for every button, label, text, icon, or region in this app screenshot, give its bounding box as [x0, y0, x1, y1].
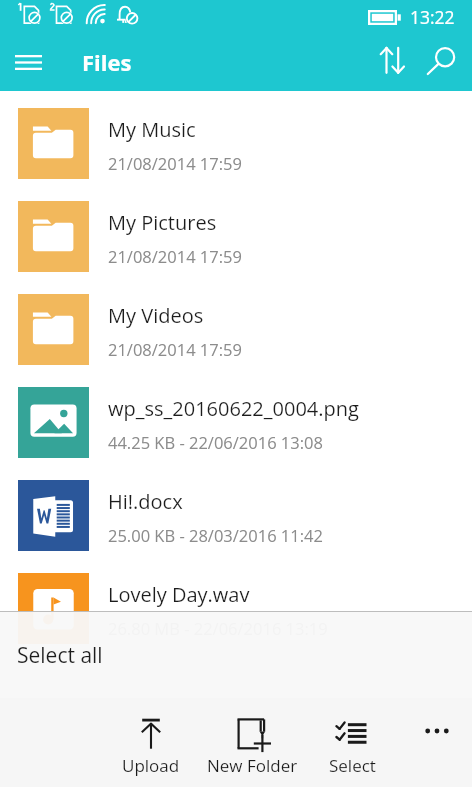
button[interactable]: My Videos [0, 284, 472, 377]
staticText: 13:22 [410, 5, 455, 29]
button[interactable]: Menu [0, 34, 56, 91]
staticText: Lovely Day.wav [108, 581, 250, 608]
button[interactable]: More options [398, 698, 472, 787]
staticText: wp_ss_20160622_0004.png [108, 395, 359, 422]
staticText: 21/08/2014 17:59 [108, 245, 242, 267]
button[interactable]: New Folder [204, 698, 300, 787]
staticText: 21/08/2014 17:59 [108, 152, 242, 174]
button[interactable]: Upload [103, 698, 199, 787]
button[interactable]: My Music [0, 98, 472, 191]
button[interactable]: Sort [367, 34, 418, 91]
staticText: My Music [108, 116, 196, 143]
staticText: My Videos [108, 302, 204, 329]
button[interactable]: wp_ss_20160622_0004.png [0, 377, 472, 470]
button[interactable]: Select all [0, 612, 472, 698]
staticText: 25.00 KB - 28/03/2016 11:42 [108, 524, 323, 546]
staticText: Hi!.docx [108, 488, 183, 515]
staticText: 44.25 KB - 22/06/2016 13:08 [108, 431, 323, 453]
button[interactable]: Hi!.docx [0, 470, 472, 563]
staticText: 21/08/2014 17:59 [108, 338, 242, 360]
staticText: Files [82, 47, 132, 77]
button[interactable]: Lovely Day.wav [0, 563, 472, 656]
button[interactable]: Search [418, 34, 472, 91]
staticText: Select all [17, 641, 103, 670]
button[interactable]: Select [304, 698, 400, 787]
button[interactable]: My Pictures [0, 191, 472, 284]
staticText: My Pictures [108, 209, 217, 236]
staticText: New Folder [207, 754, 298, 777]
staticText: Upload [122, 754, 180, 777]
staticText: Select [329, 754, 376, 777]
